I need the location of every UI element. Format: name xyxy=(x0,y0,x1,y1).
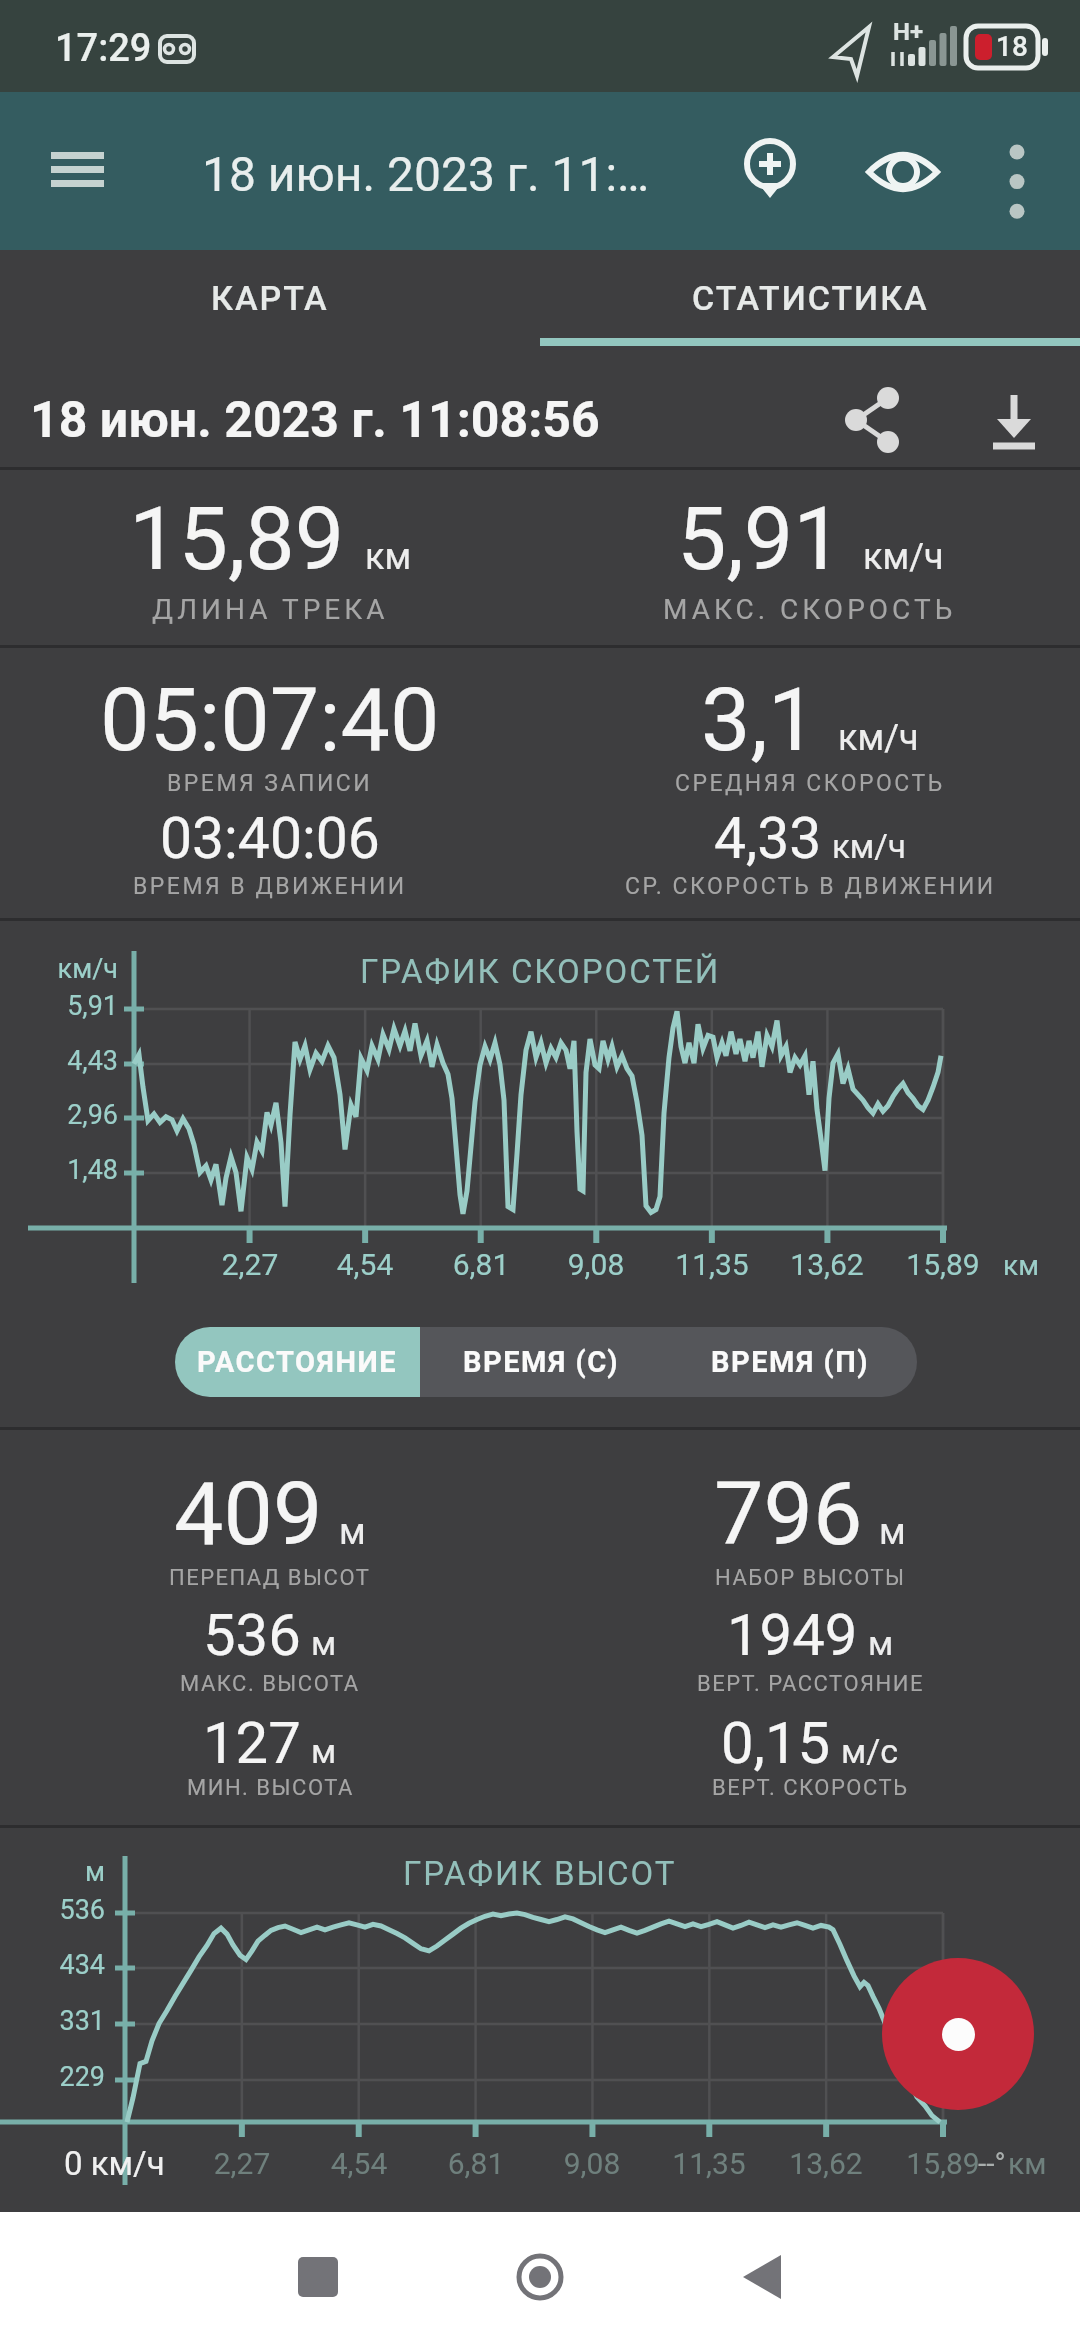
staticText: км/ч xyxy=(863,536,944,578)
button[interactable] xyxy=(966,373,1062,469)
staticText: 15,89 xyxy=(863,1247,1023,1282)
button[interactable]: ВРЕМЯ (П) xyxy=(663,1327,917,1397)
staticText: НАБОР ВЫСОТЫ xyxy=(715,1565,906,1591)
staticText: 5,91 xyxy=(0,990,118,1022)
button[interactable]: СТАТИСТИКА xyxy=(540,250,1080,346)
button[interactable] xyxy=(973,116,1063,228)
staticText: м xyxy=(0,1856,105,1888)
staticText: 6,81 xyxy=(401,1247,561,1282)
staticText: ВЕРТ. СКОРОСТЬ xyxy=(712,1775,909,1801)
button[interactable]: РАССТОЯНИЕ xyxy=(175,1327,420,1397)
staticText: СР. СКОРОСТЬ В ДВИЖЕНИИ xyxy=(625,873,996,900)
staticText: км/ч xyxy=(832,827,906,866)
staticText: 11,35 xyxy=(632,1247,792,1282)
staticText: ВРЕМЯ (С) xyxy=(463,1345,620,1379)
staticText: 18 xyxy=(996,30,1028,63)
staticText: 2,96 xyxy=(0,1099,118,1131)
staticText: ВРЕМЯ ЗАПИСИ xyxy=(167,770,373,797)
button[interactable] xyxy=(714,2229,810,2325)
staticText: 796 xyxy=(714,1462,863,1565)
staticText: км xyxy=(365,536,412,578)
staticText: 13,62 xyxy=(746,2146,906,2181)
staticText: 5,91 xyxy=(677,487,843,590)
button[interactable] xyxy=(847,116,959,228)
staticText: м xyxy=(868,1623,894,1663)
staticText: H+ xyxy=(893,18,924,46)
staticText: ГРАФИК ВЫСОТ xyxy=(403,1854,677,1893)
staticText: ВРЕМЯ В ДВИЖЕНИИ xyxy=(133,873,407,900)
staticText: 0,15 xyxy=(721,1709,831,1777)
staticText: РАССТОЯНИЕ xyxy=(197,1345,398,1379)
staticText: 536 xyxy=(203,1601,301,1669)
button[interactable] xyxy=(882,1958,1034,2110)
staticText: м xyxy=(311,1731,337,1771)
staticText: 2,27 xyxy=(170,1247,330,1282)
staticText: 0 км/ч xyxy=(64,2144,165,2183)
staticText: 17:29 xyxy=(55,26,152,71)
staticText: МИН. ВЫСОТА xyxy=(187,1775,354,1801)
button[interactable] xyxy=(824,373,920,469)
staticText: 1,48 xyxy=(0,1154,118,1186)
staticText: 05:07:40 xyxy=(100,668,440,771)
staticText: 229 xyxy=(0,2061,105,2093)
staticText: 1949 xyxy=(727,1601,858,1669)
staticText: ГРАФИК СКОРОСТЕЙ xyxy=(360,952,721,991)
staticText: 18 июн. 2023 г. 11:… xyxy=(202,146,650,202)
staticText: СРЕДНЯЯ СКОРОСТЬ xyxy=(675,770,945,797)
staticText: ДЛИНА ТРЕКА xyxy=(152,593,389,626)
staticText: 6,81 xyxy=(396,2146,556,2181)
staticText: км xyxy=(1008,2146,1047,2181)
staticText: 9,08 xyxy=(516,1247,676,1282)
button[interactable] xyxy=(270,2229,366,2325)
staticText: 11,35 xyxy=(629,2146,789,2181)
staticText: ВРЕМЯ (П) xyxy=(711,1345,869,1379)
staticText: СТАТИСТИКА xyxy=(692,278,929,318)
staticText: м xyxy=(311,1623,337,1663)
staticText: км/ч xyxy=(0,953,118,985)
staticText: 127 xyxy=(203,1709,301,1777)
staticText: 409 xyxy=(174,1462,323,1565)
staticText: 18 июн. 2023 г. 11:08:56 xyxy=(30,391,600,450)
button[interactable]: КАРТА xyxy=(0,250,540,346)
staticText: 4,54 xyxy=(279,2146,439,2181)
staticText: 3,1 xyxy=(701,668,818,771)
staticText: км xyxy=(1003,1249,1039,1282)
staticText: м xyxy=(339,1511,366,1553)
staticText: ПЕРЕПАД ВЫСОТ xyxy=(169,1565,371,1591)
staticText: 4,33 xyxy=(714,805,822,872)
staticText: 15,89 xyxy=(863,2146,1023,2181)
staticText: 2,27 xyxy=(162,2146,322,2181)
staticText: 9,08 xyxy=(512,2146,672,2181)
staticText: ВЕРТ. РАССТОЯНИЕ xyxy=(697,1671,924,1697)
button[interactable] xyxy=(492,2229,588,2325)
staticText: км/ч xyxy=(838,717,919,759)
staticText: м/с xyxy=(841,1731,899,1771)
staticText: МАКС. СКОРОСТЬ xyxy=(663,593,957,626)
staticText: --° xyxy=(978,2146,1006,2181)
staticText: 536 xyxy=(0,1894,105,1926)
button[interactable]: ВРЕМЯ (С) xyxy=(420,1327,663,1397)
staticText: 4,43 xyxy=(0,1045,118,1077)
staticText: КАРТА xyxy=(211,278,329,318)
staticText: 4,54 xyxy=(285,1247,445,1282)
staticText: 13,62 xyxy=(747,1247,907,1282)
staticText: 331 xyxy=(0,2005,105,2037)
button[interactable] xyxy=(29,126,125,216)
button[interactable] xyxy=(714,116,826,228)
staticText: 03:40:06 xyxy=(160,805,380,872)
staticText: м xyxy=(879,1511,906,1553)
staticText: 434 xyxy=(0,1949,105,1981)
staticText: 15,89 xyxy=(129,487,345,590)
staticText: МАКС. ВЫСОТА xyxy=(180,1671,360,1697)
